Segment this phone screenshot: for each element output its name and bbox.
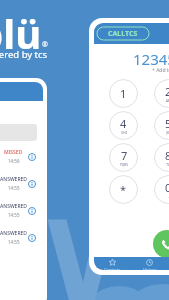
button[interactable]: History <box>131 257 168 270</box>
staticText: 1 <box>120 86 127 101</box>
staticText: ABC <box>166 99 169 103</box>
button[interactable]: Contacts <box>94 257 131 270</box>
button[interactable]: ANSWERED <box>0 224 43 251</box>
staticText: Contacts <box>104 267 121 270</box>
staticText: 2 <box>165 84 169 99</box>
button[interactable]: CALLTCS <box>101 27 145 41</box>
staticText: 14:55 <box>8 212 20 218</box>
button[interactable]: 2 <box>154 79 169 108</box>
button[interactable]: 0 <box>154 175 169 204</box>
button[interactable]: Call <box>153 230 169 258</box>
button[interactable]: Call details <box>28 234 36 242</box>
staticText: powered by tcs <box>0 48 48 61</box>
button[interactable]: + Add to contacts <box>152 67 169 74</box>
button[interactable]: ANSWERED <box>0 197 43 224</box>
staticText: MISSED <box>4 149 23 156</box>
button[interactable]: 1 <box>109 79 138 108</box>
button[interactable]: * <box>109 175 138 204</box>
staticText: ® <box>42 40 48 50</box>
staticText: 7 <box>121 148 128 163</box>
staticText: 14:55 <box>8 239 20 245</box>
staticText: 14:55 <box>8 185 20 191</box>
staticText: 5 <box>165 116 169 131</box>
staticText: JKL <box>166 131 169 135</box>
staticText: * <box>120 182 127 197</box>
button[interactable]: 5 <box>154 111 169 140</box>
staticText: GHI <box>121 131 127 135</box>
staticText: ANSWERED <box>0 203 27 210</box>
staticText: + <box>168 195 169 199</box>
staticText: ANSWERED <box>0 176 27 183</box>
button[interactable]: 8 <box>154 143 169 172</box>
button[interactable]: ANSWERED <box>0 170 43 197</box>
staticText: blü <box>0 6 42 60</box>
staticText: 4 <box>120 116 127 131</box>
staticText: 1234567890 <box>133 49 169 65</box>
staticText: CALLTCS <box>108 29 138 39</box>
staticText: ANSWERED <box>0 230 27 237</box>
staticText: PQRS <box>120 163 128 167</box>
staticText: 8 <box>165 148 169 163</box>
staticText: 14:56 <box>8 158 20 164</box>
button[interactable]: Call details <box>28 153 36 161</box>
button[interactable]: MISSED <box>0 143 43 170</box>
button[interactable]: Call details <box>28 180 36 188</box>
staticText: TUV <box>166 163 169 167</box>
staticText: 0 <box>165 180 169 195</box>
staticText: History <box>143 267 157 270</box>
button[interactable]: Call details <box>28 207 36 215</box>
button[interactable]: 7 <box>109 143 138 172</box>
button[interactable]: 4 <box>109 111 138 140</box>
